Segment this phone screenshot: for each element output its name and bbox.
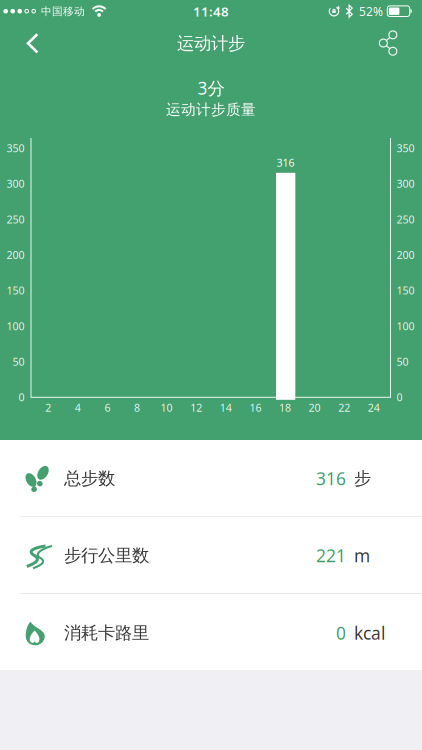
staticText: 316 — [316, 467, 346, 490]
staticText: 10 — [161, 400, 173, 415]
staticText: 100 — [396, 319, 414, 333]
staticText: 步行公里数 — [64, 545, 149, 566]
staticText: 20 — [309, 400, 321, 415]
staticText: 16 — [249, 400, 261, 415]
staticText: 3分 — [197, 76, 224, 99]
staticText: 0 — [336, 621, 346, 644]
staticText: 150 — [396, 283, 414, 298]
staticText: 0 — [18, 390, 24, 404]
staticText: 总步数 — [64, 468, 115, 489]
staticText: 316 — [277, 155, 295, 170]
staticText: 221 — [316, 544, 346, 567]
staticText: 50 — [12, 354, 24, 369]
staticText: 中国移动 — [41, 5, 85, 18]
staticText: 250 — [6, 212, 24, 226]
staticText: kcal — [354, 621, 385, 644]
staticText: 18 — [279, 400, 291, 415]
staticText: 350 — [396, 141, 414, 155]
staticText: 100 — [6, 319, 24, 333]
staticText: 6 — [104, 400, 110, 415]
staticText: 运动计步质量 — [166, 100, 256, 118]
staticText: 24 — [368, 400, 380, 415]
staticText: 350 — [6, 141, 24, 155]
staticText: 14 — [220, 400, 232, 415]
staticText: 8 — [134, 400, 140, 415]
staticText: 2 — [45, 400, 51, 415]
staticText: 12 — [190, 400, 202, 415]
staticText: 4 — [75, 400, 81, 415]
staticText: 300 — [6, 177, 24, 191]
staticText: 50 — [396, 354, 408, 369]
staticText: 步 — [354, 468, 371, 489]
staticText: 300 — [396, 177, 414, 191]
staticText: 22 — [338, 400, 350, 415]
staticText: 消耗卡路里 — [64, 622, 149, 644]
staticText: 150 — [6, 283, 24, 298]
staticText: 200 — [396, 248, 414, 262]
staticText: 52% — [359, 3, 383, 19]
staticText: 200 — [6, 248, 24, 262]
staticText: 11:48 — [193, 2, 229, 20]
staticText: 0 — [396, 390, 402, 404]
staticText: m — [354, 544, 370, 567]
staticText: 250 — [396, 212, 414, 226]
staticText: 运动计步 — [177, 33, 245, 54]
